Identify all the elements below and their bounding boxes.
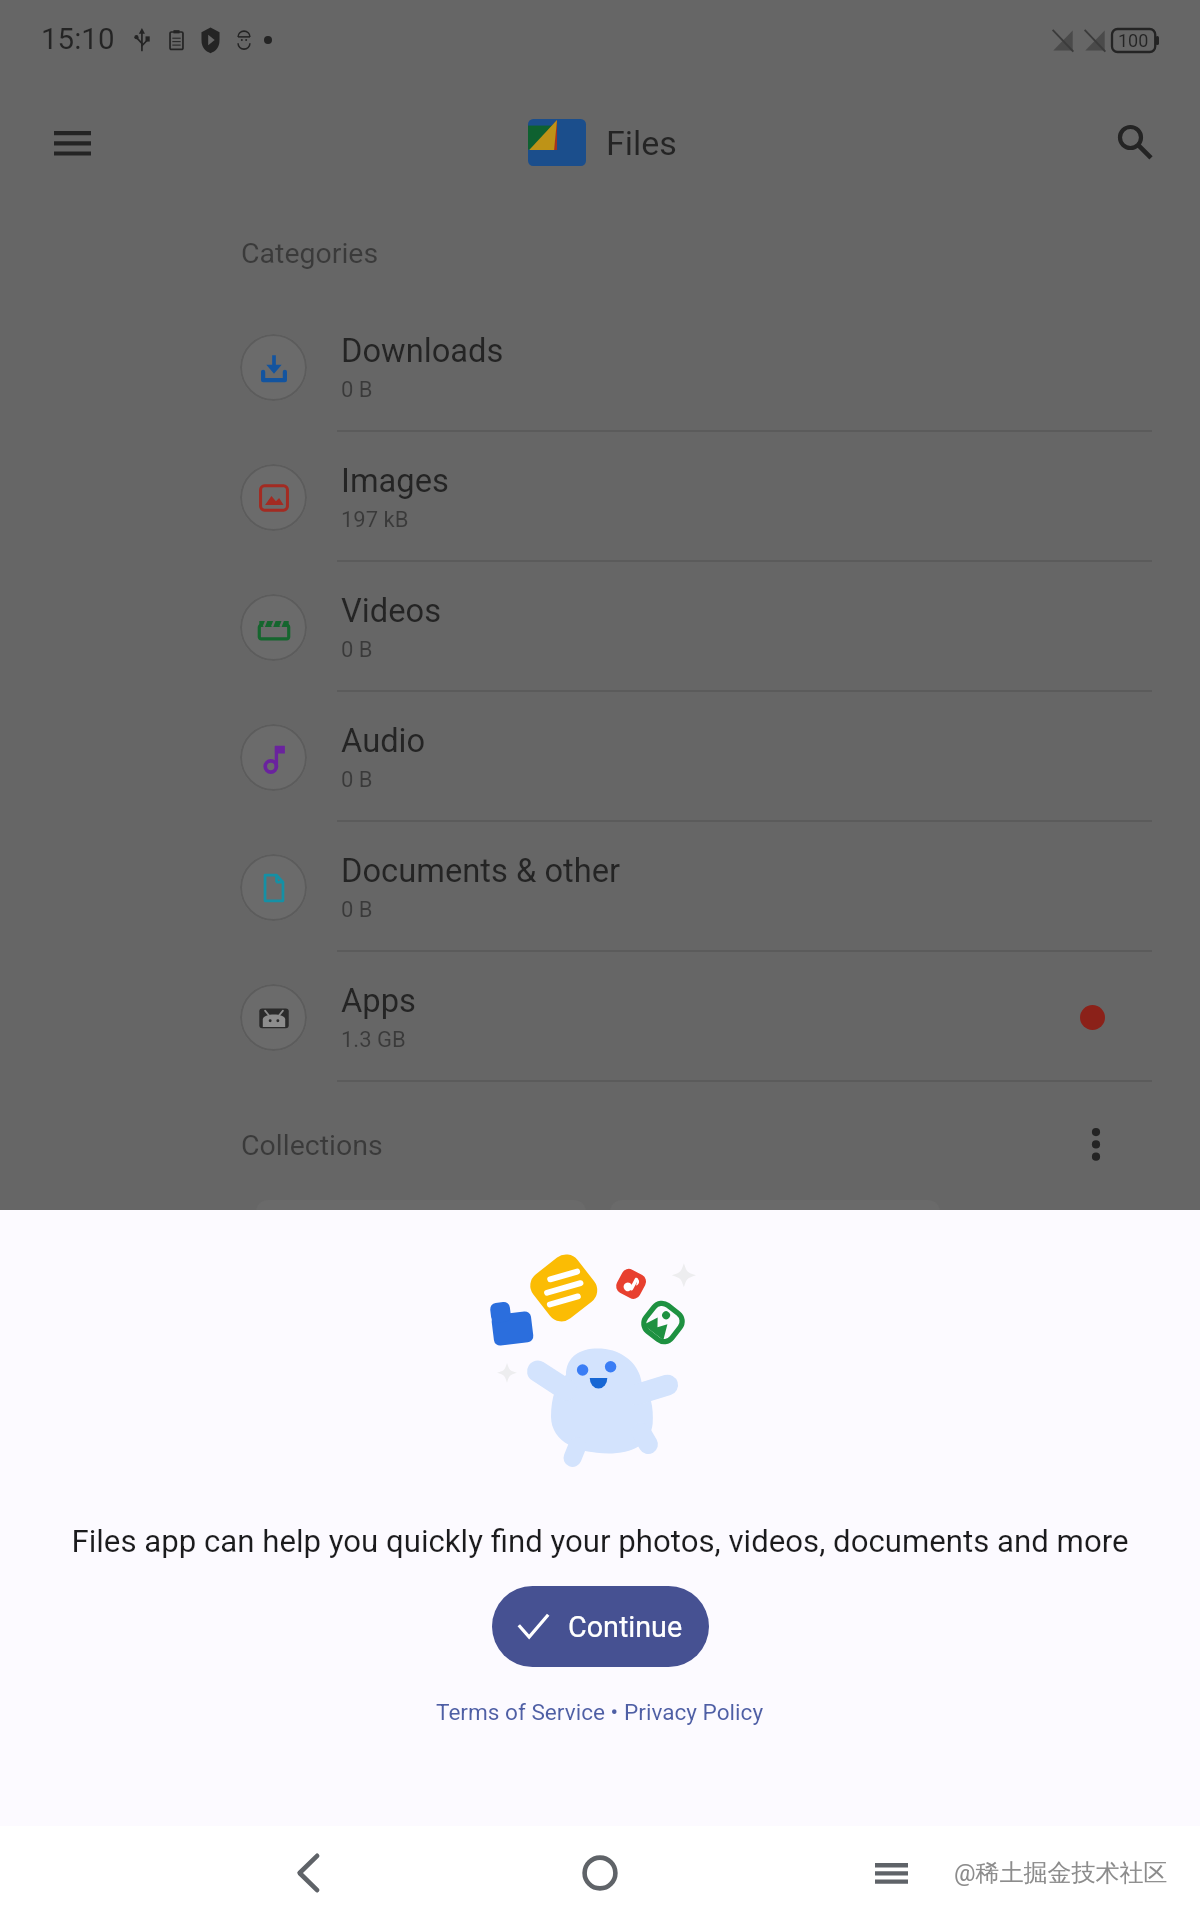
staticText: @稀土掘金技术社区 (954, 1858, 1168, 1888)
staticText: Categories (241, 237, 379, 270)
staticText: Downloads (341, 332, 504, 370)
staticText: Files (606, 123, 677, 163)
staticText: Collections (241, 1129, 383, 1162)
button[interactable]: Search (1094, 105, 1170, 181)
button[interactable]: Documents & other (0, 822, 1200, 952)
button[interactable]: Videos (0, 562, 1200, 692)
staticText: • (605, 1699, 624, 1725)
staticText: Images (341, 462, 449, 500)
staticText: 197 kB (341, 507, 409, 533)
staticText: Audio (341, 722, 426, 760)
button[interactable]: Audio (0, 692, 1200, 822)
staticText: 0 B (341, 767, 373, 793)
button[interactable]: Home (565, 1838, 635, 1908)
staticText: Videos (341, 592, 442, 630)
staticText: Documents & other (341, 852, 621, 890)
button[interactable]: More options (1066, 1114, 1126, 1174)
staticText: Continue (568, 1610, 683, 1644)
button[interactable]: Apps (0, 952, 1200, 1082)
staticText: 100 (1118, 30, 1149, 51)
staticText: 0 B (341, 897, 373, 923)
button[interactable]: Terms of Service (436, 1699, 605, 1725)
staticText: 1.3 GB (341, 1027, 406, 1053)
button[interactable]: Recent apps (856, 1838, 926, 1908)
button[interactable]: Images (0, 432, 1200, 562)
button[interactable]: Downloads (0, 302, 1200, 432)
button[interactable]: Continue (492, 1586, 709, 1667)
staticText: 0 B (341, 377, 373, 403)
staticText: 15:10 (41, 22, 115, 57)
staticText: Files app can help you quickly find your… (71, 1523, 1129, 1560)
button[interactable]: Open navigation menu (34, 105, 110, 181)
button[interactable]: Privacy Policy (624, 1699, 764, 1725)
staticText: Apps (341, 982, 416, 1020)
button[interactable]: Back (273, 1838, 343, 1908)
staticText: 0 B (341, 637, 373, 663)
